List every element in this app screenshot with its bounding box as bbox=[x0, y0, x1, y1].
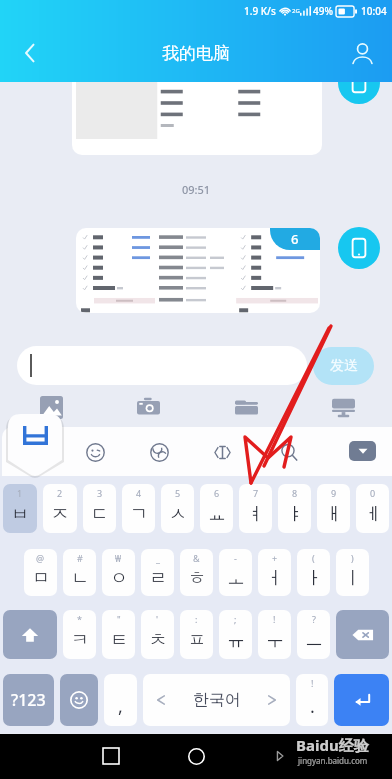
button[interactable]: Backspace bbox=[336, 610, 389, 659]
button[interactable]: Home bbox=[174, 734, 218, 778]
button[interactable]: 3 bbox=[83, 484, 116, 533]
button[interactable] bbox=[72, 60, 322, 155]
staticText: 10:04 bbox=[361, 4, 387, 18]
button[interactable]: Shift bbox=[3, 610, 57, 659]
staticText: 9 bbox=[331, 487, 337, 499]
staticText: 7 bbox=[253, 487, 259, 499]
button[interactable]: 8 bbox=[278, 484, 311, 533]
button[interactable]: Device avatar bbox=[338, 62, 380, 104]
staticText: 09:51 bbox=[182, 182, 211, 197]
button[interactable]: 1 bbox=[3, 484, 37, 533]
button[interactable]: ! bbox=[258, 610, 291, 659]
staticText: ₩ bbox=[115, 552, 122, 564]
button[interactable]: @ bbox=[24, 549, 57, 596]
staticText: ㅈ bbox=[51, 503, 69, 526]
button[interactable]: 6 bbox=[76, 228, 320, 313]
staticText: - bbox=[234, 552, 237, 564]
staticText: " bbox=[117, 613, 121, 625]
button[interactable]: Back bbox=[8, 31, 52, 75]
button[interactable]: Enter bbox=[334, 674, 389, 726]
button[interactable]: ! bbox=[296, 674, 328, 726]
button[interactable]: ; bbox=[219, 610, 252, 659]
button[interactable]: Text cursor bbox=[211, 441, 233, 463]
staticText: ㅇ bbox=[110, 567, 128, 590]
staticText: 3 bbox=[97, 487, 103, 499]
staticText: ' bbox=[156, 613, 159, 625]
button[interactable]: ' bbox=[141, 610, 174, 659]
button[interactable]: ? bbox=[297, 610, 330, 659]
staticText: ㅅ bbox=[169, 503, 187, 526]
staticText: ) bbox=[351, 552, 354, 564]
button[interactable]: ₩ bbox=[102, 549, 135, 596]
staticText: ㅑ bbox=[286, 503, 304, 526]
button[interactable]: Emoji bbox=[60, 674, 98, 726]
button[interactable]: Profile bbox=[340, 31, 384, 75]
button[interactable]: Hide keyboard bbox=[349, 441, 376, 461]
button[interactable]: 4 bbox=[122, 484, 155, 533]
staticText: 发送 bbox=[330, 357, 358, 375]
button[interactable]: # bbox=[63, 549, 96, 596]
staticText: * bbox=[77, 613, 82, 625]
button[interactable]: 5 bbox=[161, 484, 194, 533]
staticText: ㅣ bbox=[344, 567, 362, 590]
staticText: ㅂ bbox=[11, 503, 29, 526]
staticText: jingyan.baidu.com bbox=[298, 755, 368, 766]
button[interactable]: Search bbox=[278, 441, 300, 463]
button[interactable]: ) bbox=[336, 549, 369, 596]
button[interactable]: Screen share bbox=[323, 387, 363, 427]
button[interactable]: * bbox=[63, 610, 96, 659]
button[interactable]: ( bbox=[297, 549, 330, 596]
staticText: 49% bbox=[313, 4, 333, 18]
button[interactable]: 7 bbox=[239, 484, 272, 533]
staticText: 한국어 bbox=[193, 690, 241, 710]
staticText: 6 bbox=[291, 230, 299, 248]
staticText: 4 bbox=[136, 487, 142, 499]
staticText: Baidu经验 bbox=[296, 735, 369, 755]
button[interactable]: Numbers and symbols bbox=[3, 674, 54, 726]
button[interactable]: Gallery bbox=[31, 387, 71, 427]
staticText: ( bbox=[312, 552, 315, 564]
staticText: 2 bbox=[57, 487, 63, 499]
staticText: ㅎ bbox=[188, 567, 206, 590]
button[interactable]: Emoji bbox=[84, 441, 106, 463]
staticText: . bbox=[310, 694, 315, 719]
button[interactable]: & bbox=[180, 549, 213, 596]
staticText: ㅗ bbox=[227, 567, 245, 590]
button[interactable]: Recents bbox=[89, 734, 133, 778]
staticText: ㅊ bbox=[149, 629, 167, 652]
button[interactable]: 9 bbox=[317, 484, 350, 533]
staticText: 8 bbox=[292, 487, 298, 499]
button[interactable]: : bbox=[180, 610, 213, 659]
button[interactable]: 0 bbox=[356, 484, 389, 533]
button[interactable]: Device avatar bbox=[338, 227, 380, 269]
staticText: 2G bbox=[292, 7, 300, 15]
button[interactable] bbox=[17, 346, 307, 385]
button[interactable]: - bbox=[219, 549, 252, 596]
staticText: ㅕ bbox=[247, 503, 265, 526]
button[interactable]: Files bbox=[226, 387, 266, 427]
button[interactable]: 2 bbox=[43, 484, 77, 533]
button[interactable]: 한국어 bbox=[143, 674, 290, 726]
staticText: 我的电脑 bbox=[162, 43, 230, 64]
staticText: ㄷ bbox=[91, 503, 109, 526]
staticText: + bbox=[272, 552, 278, 564]
button[interactable]: " bbox=[102, 610, 135, 659]
staticText: 5 bbox=[175, 487, 181, 499]
button[interactable]: , bbox=[104, 674, 137, 726]
staticText: # bbox=[77, 552, 83, 564]
staticText: ㄹ bbox=[149, 567, 167, 590]
staticText: , bbox=[118, 694, 123, 719]
button[interactable]: Back bbox=[258, 734, 302, 778]
button[interactable]: Translate bbox=[148, 441, 170, 463]
staticText: ㅔ bbox=[364, 503, 382, 526]
button[interactable]: _ bbox=[141, 549, 174, 596]
staticText: ㅠ bbox=[227, 629, 245, 652]
button[interactable]: 发送 bbox=[313, 347, 374, 385]
staticText: ㅐ bbox=[325, 503, 343, 526]
button[interactable]: + bbox=[258, 549, 291, 596]
staticText: ! bbox=[273, 613, 276, 625]
staticText: ㅜ bbox=[266, 629, 284, 652]
button[interactable]: 6 bbox=[200, 484, 233, 533]
button[interactable]: Camera bbox=[128, 387, 168, 427]
staticText: : bbox=[195, 613, 198, 625]
